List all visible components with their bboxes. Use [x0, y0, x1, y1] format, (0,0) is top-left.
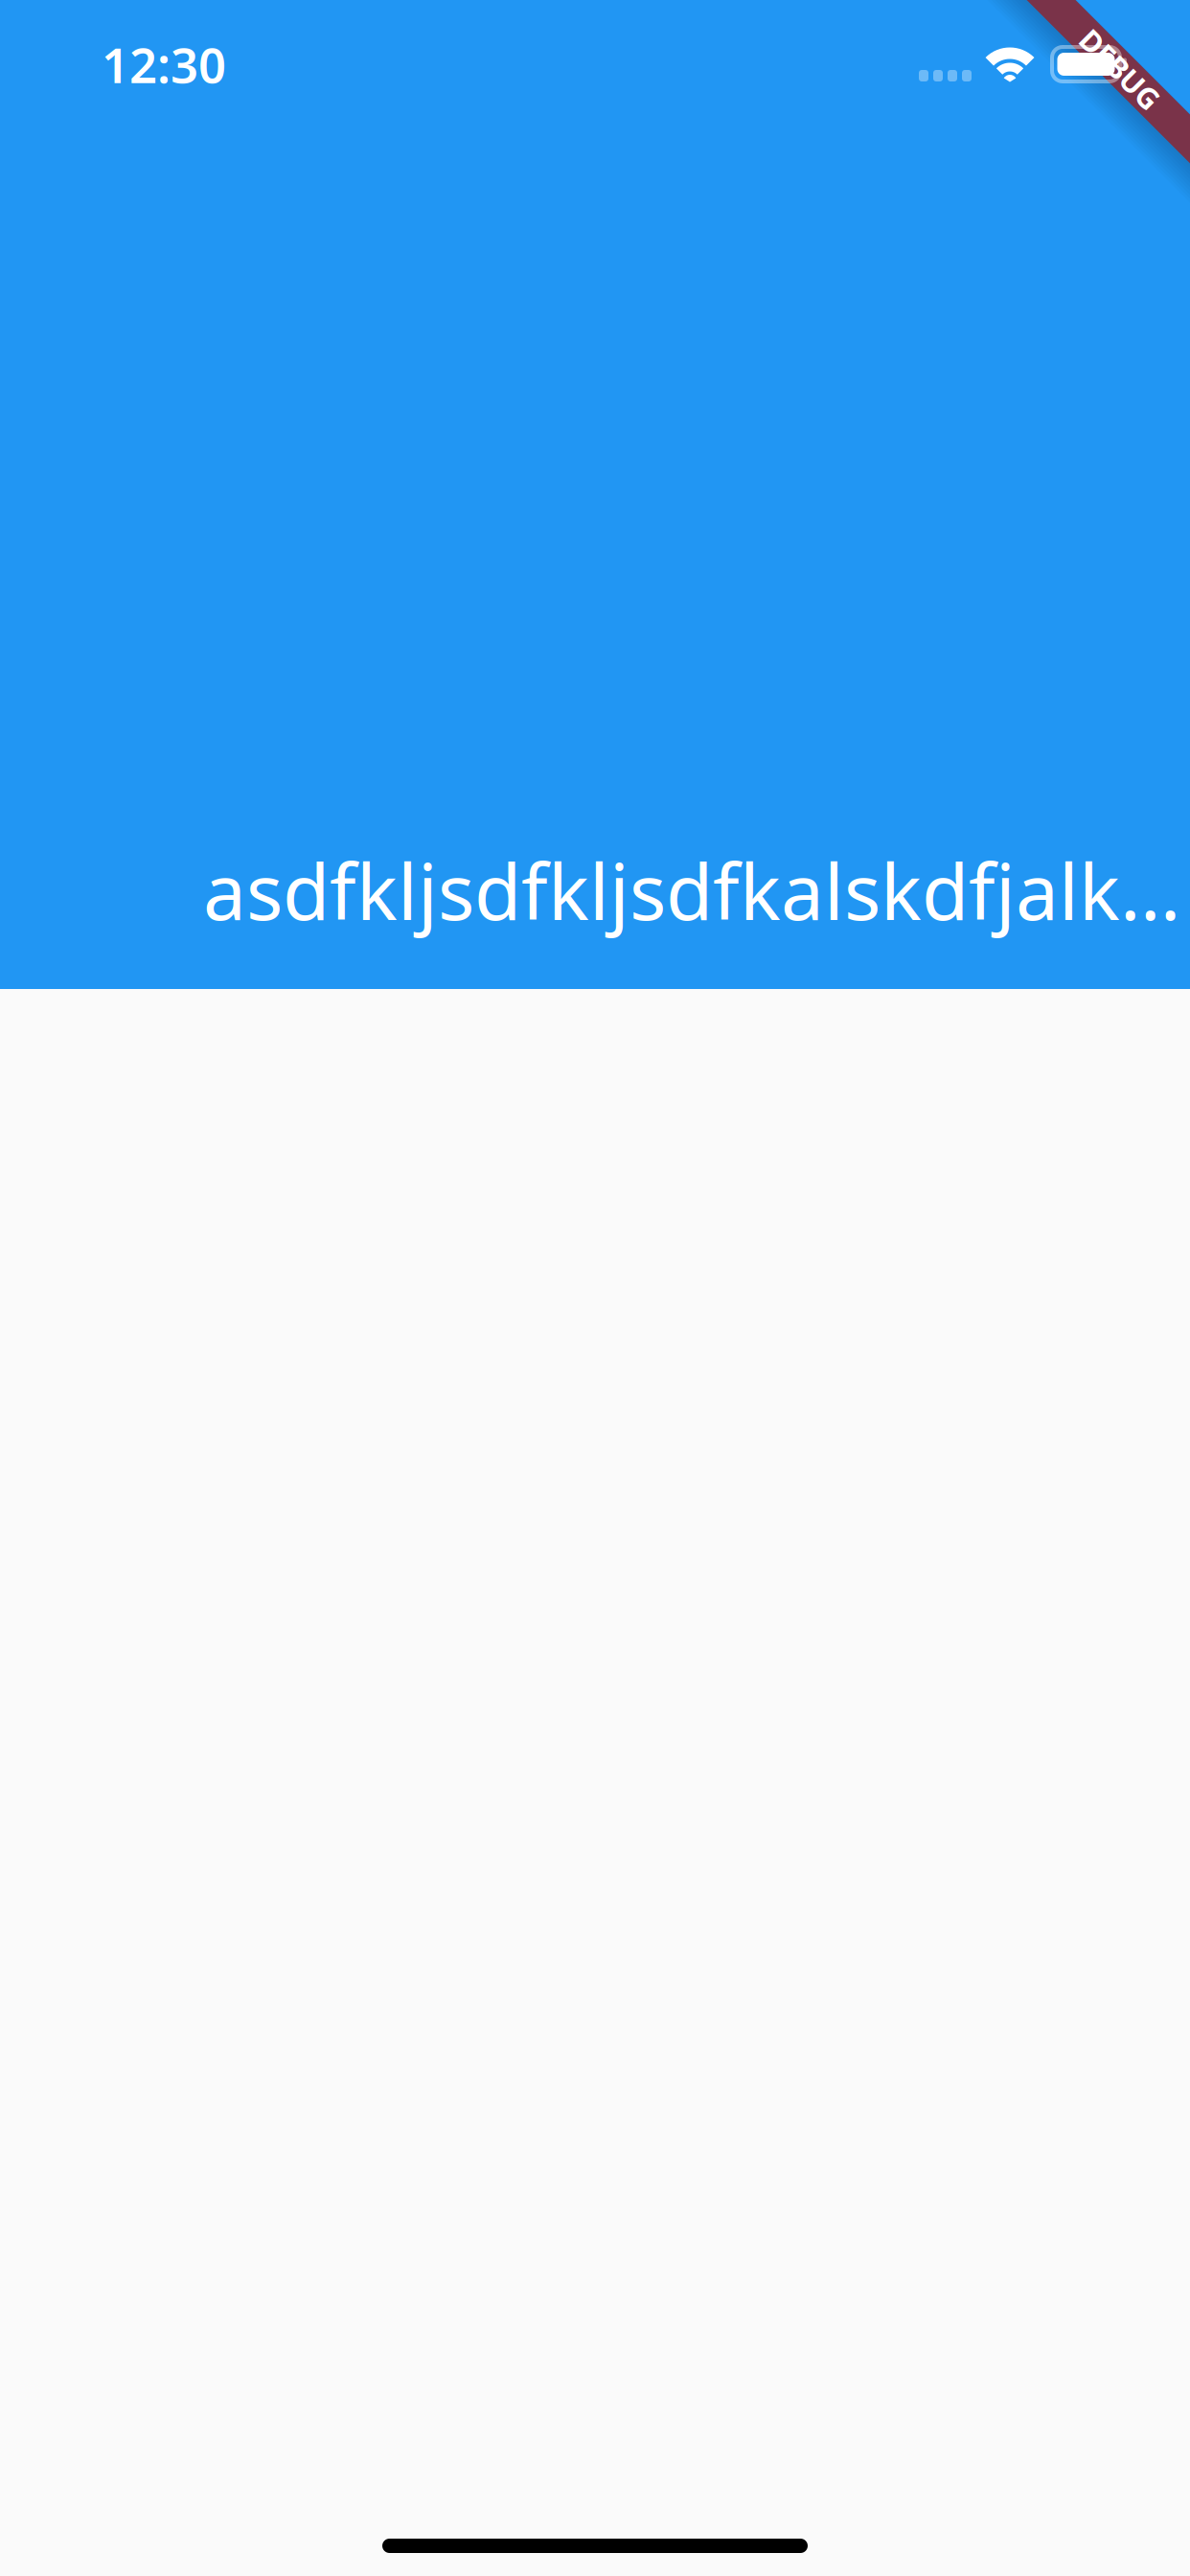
staticText: asdfkljsdfkljsdfkalskdfjalk… [203, 839, 1180, 941]
staticText: 12:30 [102, 32, 226, 97]
staticText: DEBUG [1070, 49, 1170, 88]
